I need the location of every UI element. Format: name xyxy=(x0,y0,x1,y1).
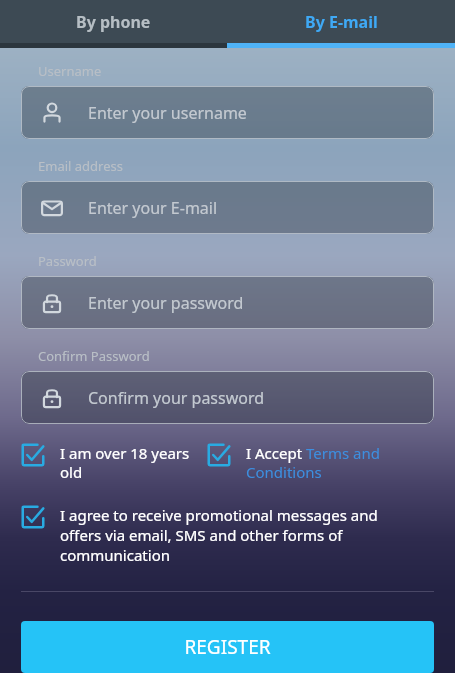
staticText: I agree to receive promotional messages … xyxy=(60,505,415,565)
button[interactable]: Enter your E-mail xyxy=(21,181,434,234)
button[interactable]: By phone xyxy=(0,0,227,43)
staticText: Username xyxy=(38,62,102,80)
button[interactable]: By E-mail xyxy=(227,0,455,43)
staticText: By E-mail xyxy=(305,11,378,33)
button[interactable]: Checkbox, checked xyxy=(21,443,207,482)
staticText: Confirm Password xyxy=(38,347,150,365)
staticText: REGISTER xyxy=(184,634,271,660)
staticText: Enter your E-mail xyxy=(88,197,218,219)
staticText: I am over 18 years old xyxy=(60,443,207,482)
staticText: Email address xyxy=(38,157,123,175)
staticText: Password xyxy=(38,252,97,270)
other: Checkbox, checked xyxy=(207,443,231,467)
button[interactable]: Checkbox, checked xyxy=(21,505,415,565)
staticText: Enter your password xyxy=(88,292,244,314)
button[interactable]: Enter your password xyxy=(21,276,434,329)
staticText: By phone xyxy=(76,11,151,33)
other: Checkbox, checked xyxy=(21,505,45,529)
button[interactable]: Enter your username xyxy=(21,86,434,139)
staticText: I Accept Terms and Conditions xyxy=(246,443,439,482)
staticText: Enter your username xyxy=(88,102,247,124)
staticText: Confirm your password xyxy=(88,387,265,409)
button[interactable]: Checkbox, checked xyxy=(207,443,439,482)
button[interactable]: Confirm your password xyxy=(21,371,434,424)
other: Checkbox, checked xyxy=(21,443,45,467)
button[interactable]: REGISTER xyxy=(21,621,434,673)
